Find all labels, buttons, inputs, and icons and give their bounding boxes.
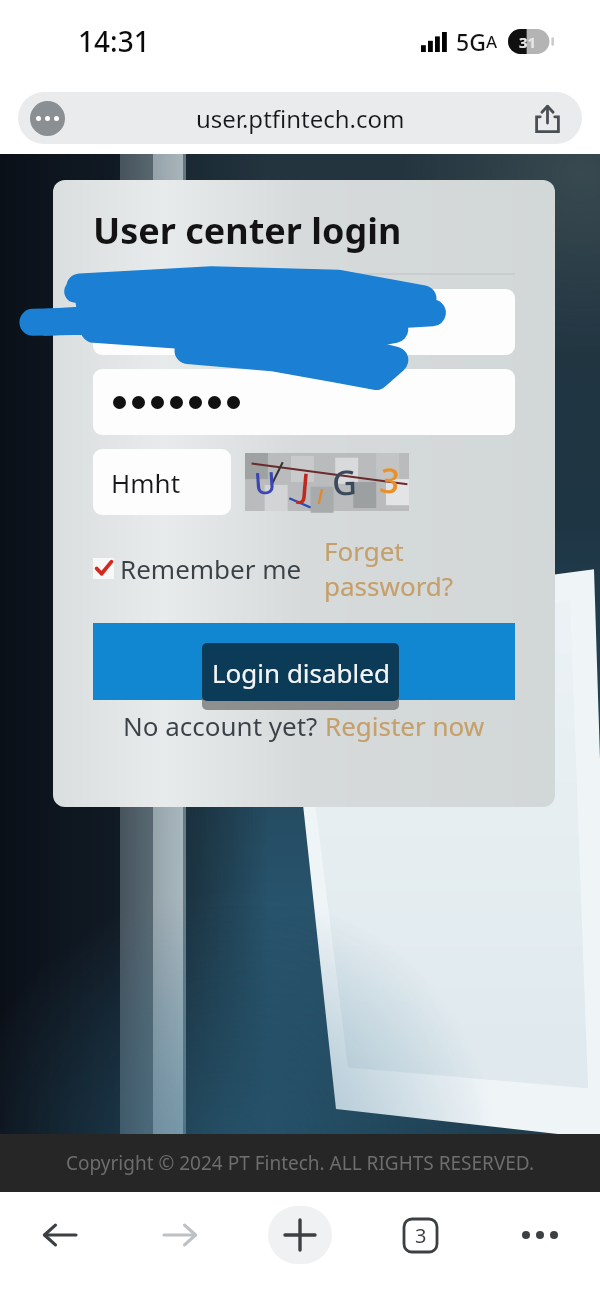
button[interactable]: Remember me: [93, 551, 302, 586]
staticText: 3: [378, 456, 402, 504]
button[interactable]: Forward: [120, 1192, 240, 1278]
staticText: Hmht: [111, 465, 181, 500]
staticText: G: [331, 459, 358, 505]
button[interactable]: More options: [480, 1192, 600, 1278]
staticText: 14:31: [78, 22, 150, 60]
staticText: 5G: [456, 26, 486, 57]
staticText: Forget password?: [324, 533, 515, 603]
button[interactable]: Register now: [325, 708, 485, 743]
staticText: 31: [519, 32, 537, 52]
staticText: A: [486, 30, 498, 53]
staticText: 3: [415, 1222, 427, 1249]
button[interactable]: Page settings: [18, 92, 582, 144]
button[interactable]: Password: [93, 369, 515, 435]
staticText: Register now: [325, 708, 485, 743]
staticText: Login: [265, 641, 344, 682]
button[interactable]: Hmht: [93, 449, 231, 515]
button[interactable]: Page settings: [30, 101, 65, 136]
button[interactable]: New tab: [240, 1192, 360, 1278]
staticText: User center login: [93, 206, 402, 255]
button[interactable]: Captcha image, tap to refresh: [245, 453, 409, 511]
staticText: Copyright © 2024 PT Fintech. ALL RIGHTS …: [66, 1150, 535, 1176]
button[interactable]: Share: [531, 102, 564, 135]
staticText: user.ptfintech.com: [196, 102, 405, 135]
button[interactable]: Tabs, 3 open: [360, 1192, 480, 1278]
staticText: Remember me: [120, 551, 302, 586]
staticText: No account yet?: [123, 708, 325, 743]
button[interactable]: Back: [0, 1192, 120, 1278]
button[interactable]: Username: [93, 289, 515, 355]
staticText: U: [253, 461, 278, 504]
staticText: Login disabled: [212, 655, 390, 690]
staticText: J: [298, 462, 312, 508]
button[interactable]: Forget password?: [324, 533, 515, 603]
button[interactable]: Login: [93, 623, 515, 700]
